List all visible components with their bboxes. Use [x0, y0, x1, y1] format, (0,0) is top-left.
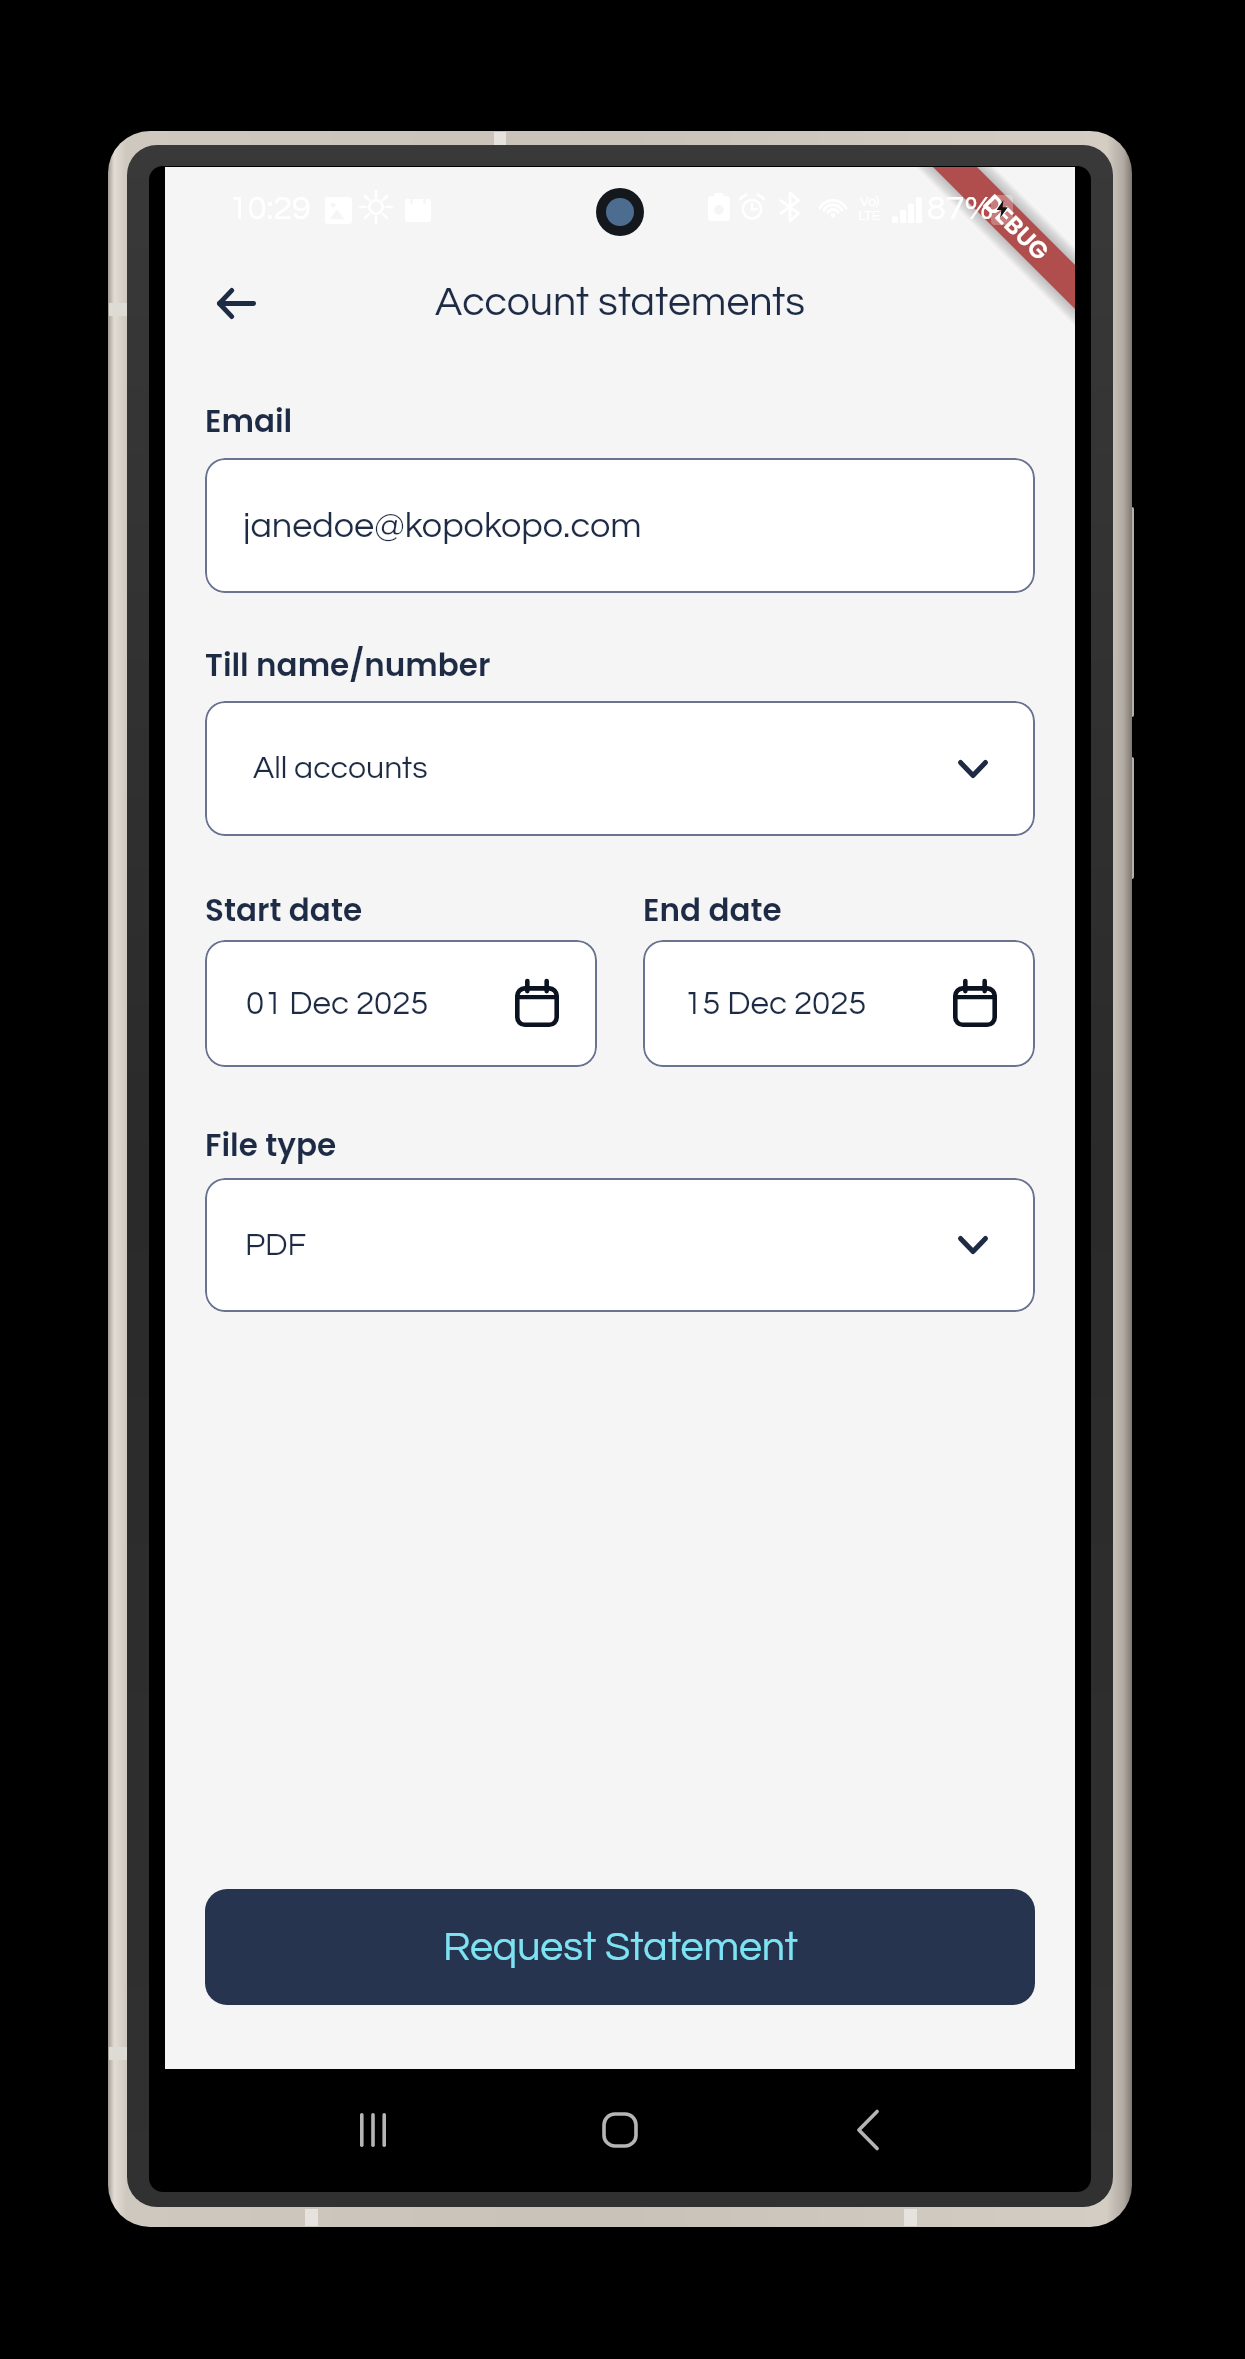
staticText: Till name/number — [205, 643, 491, 686]
staticText: End date — [643, 888, 782, 931]
staticText: Start date — [205, 888, 363, 931]
button[interactable]: Back — [828, 2090, 908, 2170]
staticText: DEBUG — [978, 187, 1057, 266]
staticText: janedoe@kopokopo.com — [243, 507, 642, 544]
staticText: LTE — [858, 209, 881, 223]
staticText: Vo) — [860, 195, 880, 209]
button[interactable]: janedoe@kopokopo.com — [205, 458, 1035, 593]
button[interactable]: All accounts — [205, 701, 1035, 836]
staticText: Email — [205, 399, 293, 442]
staticText: 15 Dec 2025 — [684, 987, 867, 1021]
staticText: File type — [205, 1123, 337, 1166]
staticText: 01 Dec 2025 — [246, 987, 429, 1021]
button[interactable]: Request Statement — [205, 1889, 1035, 2005]
staticText: Request Statement — [443, 1926, 798, 1968]
button[interactable]: Back — [205, 272, 267, 334]
staticText: 10:29 — [229, 191, 311, 226]
button[interactable]: 01 Dec 2025 — [205, 940, 597, 1067]
button[interactable]: 15 Dec 2025 — [643, 940, 1035, 1067]
staticText: All accounts — [253, 752, 428, 785]
staticText: PDF — [245, 1229, 307, 1262]
button[interactable]: PDF — [205, 1178, 1035, 1312]
staticText: Account statements — [435, 281, 806, 323]
button[interactable]: Home — [580, 2090, 660, 2170]
staticText: 87% — [927, 191, 994, 226]
button[interactable]: Recent apps — [333, 2090, 413, 2170]
